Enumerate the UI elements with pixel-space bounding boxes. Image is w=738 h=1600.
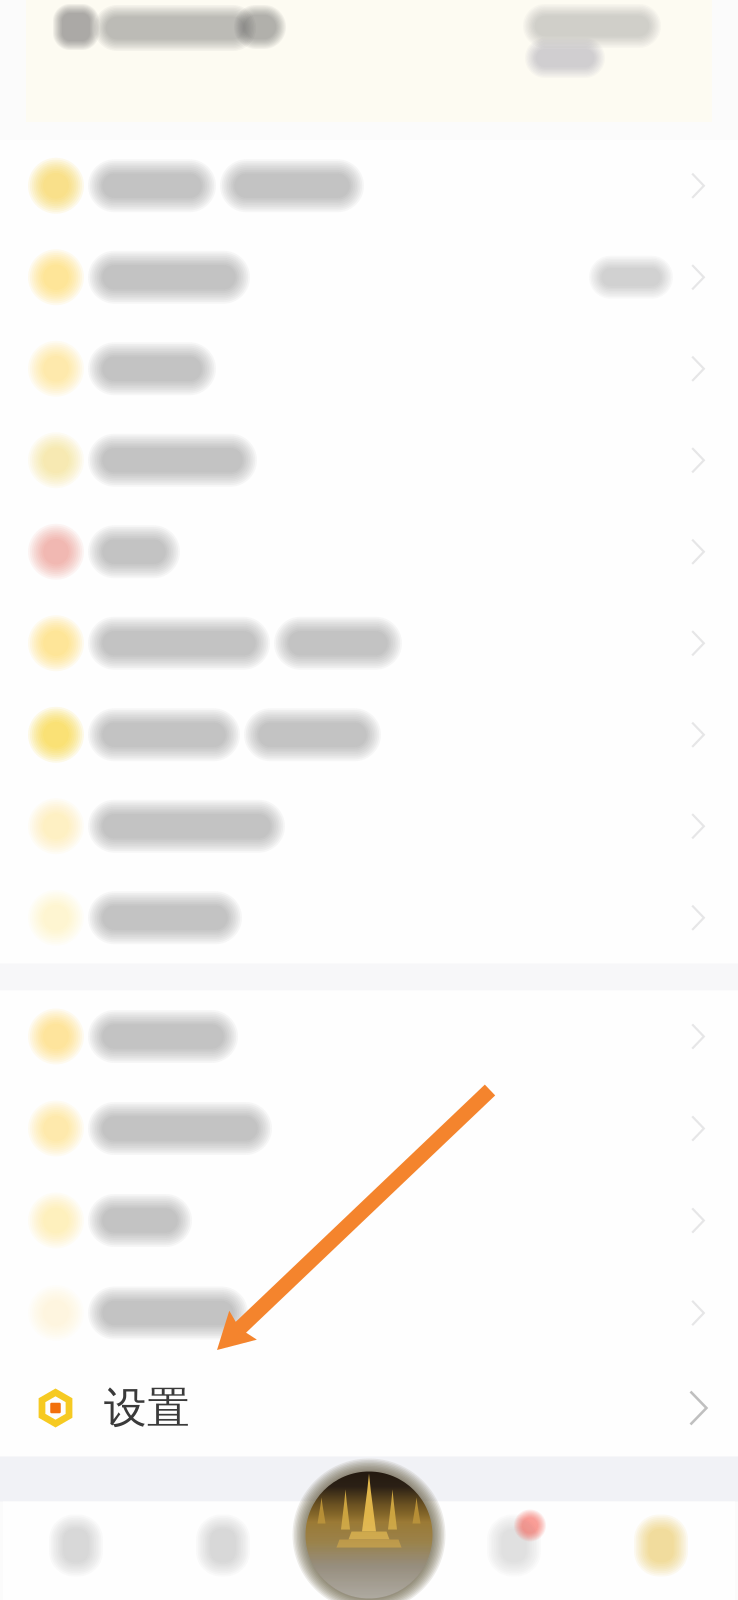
button[interactable]	[0, 140, 738, 231]
button[interactable]: Mine	[588, 1501, 735, 1600]
button[interactable]	[0, 990, 738, 1082]
button[interactable]: Home	[3, 1501, 150, 1600]
button[interactable]	[0, 231, 738, 323]
button[interactable]: Create	[289, 1455, 449, 1600]
button[interactable]	[0, 1266, 738, 1359]
button[interactable]	[0, 597, 738, 689]
button[interactable]	[0, 414, 738, 506]
button[interactable]	[0, 506, 738, 597]
button[interactable]: Messages	[441, 1501, 588, 1600]
button[interactable]: Discover	[150, 1501, 297, 1600]
button[interactable]: 设置	[0, 1359, 738, 1456]
button[interactable]	[0, 872, 738, 963]
button[interactable]	[0, 689, 738, 780]
button[interactable]	[0, 780, 738, 872]
button[interactable]	[0, 323, 738, 414]
button[interactable]	[0, 1174, 738, 1266]
staticText: 设置	[104, 1382, 190, 1434]
button[interactable]	[0, 1082, 738, 1174]
